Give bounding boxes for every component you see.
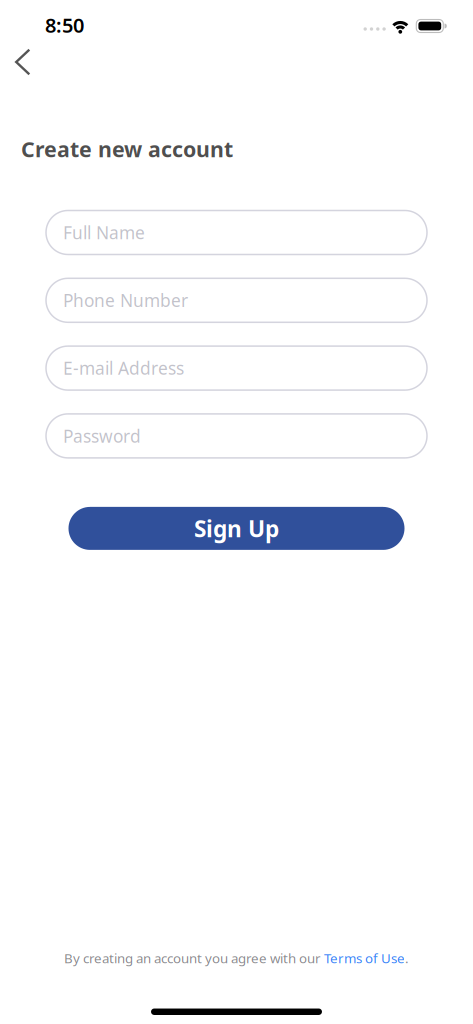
staticText: Terms of Use: [324, 949, 405, 967]
staticText: .: [405, 949, 409, 967]
staticText: Sign Up: [194, 513, 279, 543]
button[interactable]: Password: [46, 414, 427, 458]
staticText: Create new account: [21, 135, 233, 163]
button[interactable]: E-mail Address: [46, 346, 427, 390]
staticText: Password: [63, 424, 141, 447]
button[interactable]: Terms of Use: [324, 949, 405, 967]
staticText: 8:50: [45, 12, 84, 38]
staticText: Full Name: [63, 221, 145, 244]
button[interactable]: Phone Number: [46, 278, 427, 322]
button[interactable]: Sign Up: [68, 507, 404, 550]
staticText: By creating an account you agree with ou…: [64, 949, 324, 967]
button[interactable]: [0, 48, 30, 75]
staticText: Phone Number: [63, 289, 188, 312]
button[interactable]: Full Name: [46, 210, 427, 254]
staticText: E-mail Address: [63, 357, 184, 380]
